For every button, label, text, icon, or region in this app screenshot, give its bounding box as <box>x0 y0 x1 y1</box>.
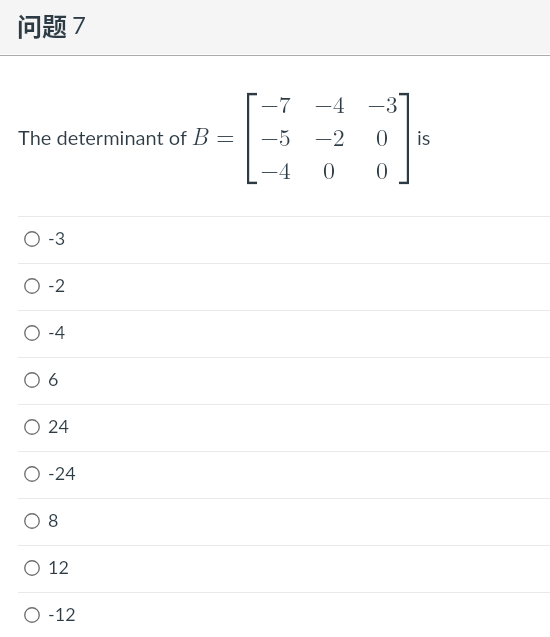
staticText: 0 <box>376 152 388 186</box>
staticText: B <box>191 118 208 152</box>
button[interactable]: 12 <box>0 546 550 592</box>
staticText: −5 <box>260 119 291 153</box>
staticText: The determinant of <box>18 125 187 149</box>
staticText: −7 <box>260 86 291 120</box>
button[interactable]: 6 <box>0 358 550 404</box>
staticText: -3 <box>48 227 66 249</box>
button[interactable]: -4 <box>0 311 550 357</box>
staticText: -4 <box>48 321 66 343</box>
button[interactable]: 8 <box>0 499 550 545</box>
staticText: 7 <box>72 10 86 39</box>
button[interactable]: -12 <box>0 593 550 637</box>
button[interactable]: -2 <box>0 264 550 310</box>
staticText: 8 <box>48 509 59 531</box>
staticText: −4 <box>314 86 345 120</box>
staticText: -12 <box>48 603 76 625</box>
staticText: 24 <box>48 415 69 437</box>
staticText: 0 <box>323 152 335 186</box>
staticText: -24 <box>48 462 76 484</box>
staticText: −3 <box>367 86 398 120</box>
button[interactable]: -3 <box>0 217 550 263</box>
staticText: −2 <box>314 119 345 153</box>
button[interactable]: 24 <box>0 405 550 451</box>
staticText: 问题 <box>17 7 68 43</box>
staticText: = <box>216 118 235 152</box>
staticText: 12 <box>48 556 69 578</box>
staticText: is <box>417 125 431 149</box>
staticText: 0 <box>376 119 388 153</box>
staticText: 6 <box>48 368 59 390</box>
button[interactable]: -24 <box>0 452 550 498</box>
staticText: −4 <box>260 152 291 186</box>
staticText: -2 <box>48 274 66 296</box>
